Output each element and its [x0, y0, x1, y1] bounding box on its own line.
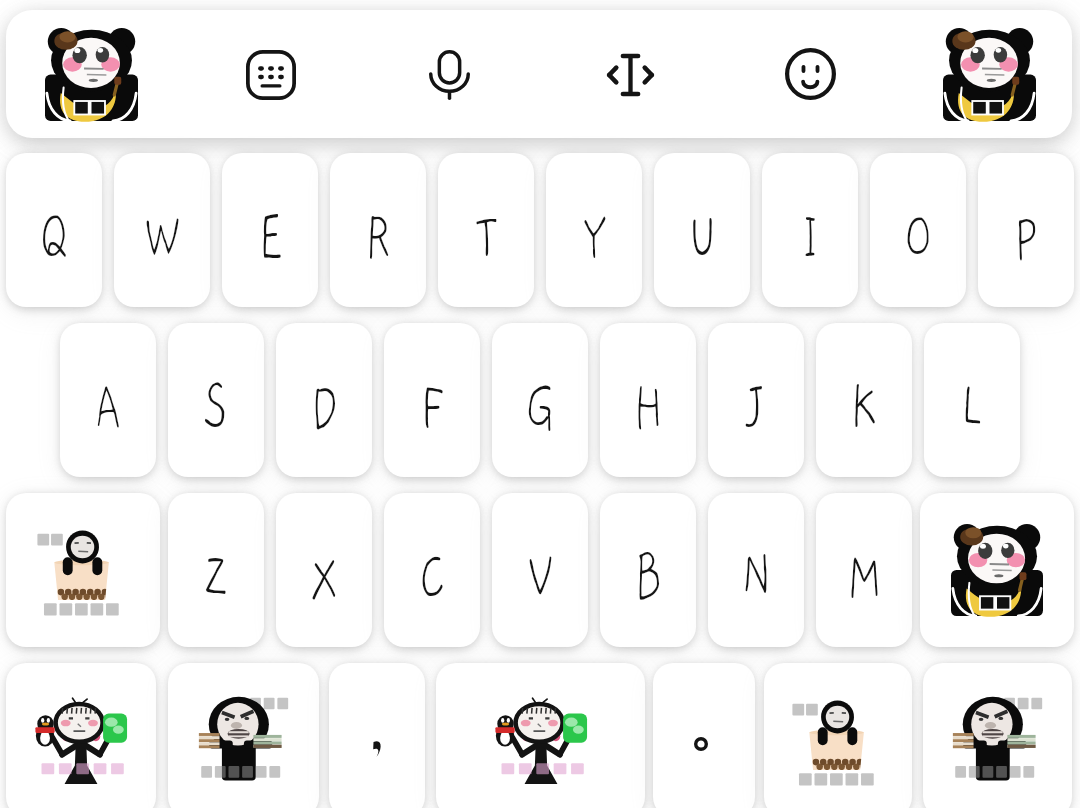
- button[interactable]: N: [708, 493, 804, 647]
- button[interactable]: U: [654, 153, 750, 307]
- staticText: Q: [40, 200, 68, 274]
- button[interactable]: Q: [6, 153, 102, 307]
- button[interactable]: V: [492, 493, 588, 647]
- staticText: S: [204, 370, 228, 444]
- button[interactable]: Sticker: [436, 663, 645, 808]
- button[interactable]: Keyboard: [246, 50, 296, 100]
- staticText: W: [144, 200, 180, 274]
- staticText: T: [475, 200, 498, 274]
- button[interactable]: Sticker: [39, 24, 143, 124]
- button[interactable]: R: [330, 153, 426, 307]
- button[interactable]: I: [762, 153, 858, 307]
- button[interactable]: O: [870, 153, 966, 307]
- staticText: E: [259, 200, 282, 274]
- staticText: U: [689, 200, 716, 274]
- button[interactable]: Z: [168, 493, 264, 647]
- button[interactable]: M: [816, 493, 912, 647]
- button[interactable]: Sticker: [923, 663, 1072, 808]
- button[interactable]: F: [384, 323, 480, 477]
- staticText: X: [311, 540, 337, 614]
- button[interactable]: Emoji: [785, 48, 836, 100]
- button[interactable]: Sticker: [937, 24, 1041, 124]
- staticText: M: [848, 540, 881, 614]
- button[interactable]: Sticker: [6, 493, 160, 647]
- button[interactable]: D: [276, 323, 372, 477]
- staticText: C: [419, 540, 445, 614]
- button[interactable]: W: [114, 153, 210, 307]
- staticText: Z: [204, 540, 228, 614]
- staticText: A: [95, 370, 121, 444]
- staticText: P: [1015, 200, 1037, 274]
- staticText: J: [748, 370, 764, 444]
- staticText: R: [366, 200, 390, 274]
- button[interactable]: G: [492, 323, 588, 477]
- button[interactable]: X: [276, 493, 372, 647]
- staticText: L: [961, 370, 983, 444]
- button[interactable]: Sticker: [920, 493, 1074, 647]
- staticText: D: [311, 370, 338, 444]
- staticText: V: [527, 540, 553, 614]
- staticText: F: [421, 370, 444, 444]
- button[interactable]: A: [60, 323, 156, 477]
- staticText: G: [526, 370, 555, 444]
- button[interactable]: E: [222, 153, 318, 307]
- staticText: N: [742, 540, 771, 614]
- button[interactable]: [329, 663, 425, 808]
- button[interactable]: P: [978, 153, 1074, 307]
- staticText: K: [851, 370, 877, 444]
- button[interactable]: Voice input: [429, 50, 470, 100]
- button[interactable]: L: [924, 323, 1020, 477]
- button[interactable]: S: [168, 323, 264, 477]
- staticText: O: [905, 200, 931, 274]
- button[interactable]: J: [708, 323, 804, 477]
- button[interactable]: Sticker: [764, 663, 912, 808]
- button[interactable]: T: [438, 153, 534, 307]
- button[interactable]: H: [600, 323, 696, 477]
- staticText: Y: [583, 200, 606, 274]
- button[interactable]: [653, 663, 755, 808]
- staticText: B: [635, 540, 662, 614]
- staticText: H: [634, 370, 663, 444]
- button[interactable]: Move cursor: [606, 52, 655, 98]
- staticText: I: [803, 200, 818, 274]
- button[interactable]: B: [600, 493, 696, 647]
- button[interactable]: Sticker: [6, 663, 156, 808]
- button[interactable]: Y: [546, 153, 642, 307]
- button[interactable]: K: [816, 323, 912, 477]
- button[interactable]: C: [384, 493, 480, 647]
- button[interactable]: Sticker: [168, 663, 319, 808]
